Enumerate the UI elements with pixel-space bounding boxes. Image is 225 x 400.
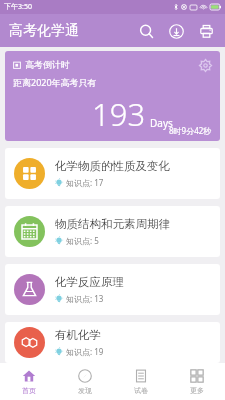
button[interactable]: 物质结构和元素周期律 <box>5 206 220 257</box>
button[interactable]: 试卷 <box>113 363 169 400</box>
staticText: Days <box>150 116 173 130</box>
staticText: 更多 <box>190 386 204 395</box>
button[interactable]: 首页 <box>0 363 57 400</box>
staticText: 有机化学 <box>55 328 101 342</box>
staticText: 知识点: 5 <box>66 235 99 246</box>
button[interactable]: Download <box>161 16 191 46</box>
staticText: 知识点: 13 <box>66 293 104 304</box>
staticText: 首页 <box>22 386 36 395</box>
staticText: 化学反应原理 <box>55 275 124 289</box>
button[interactable]: Settings <box>196 56 214 74</box>
staticText: 化学物质的性质及变化 <box>55 159 170 173</box>
button[interactable]: Search <box>131 16 161 46</box>
staticText: 试卷 <box>134 386 148 395</box>
button[interactable]: 高考倒计时 <box>5 51 220 141</box>
staticText: 距离2020年高考只有 <box>13 76 97 88</box>
button[interactable]: 发现 <box>57 363 113 400</box>
staticText: 发现 <box>78 386 92 395</box>
button[interactable]: 化学物质的性质及变化 <box>5 148 220 199</box>
staticText: 知识点: 19 <box>66 346 104 357</box>
staticText: 8时9分42秒 <box>169 125 212 136</box>
staticText: 高考化学通 <box>9 22 79 40</box>
button[interactable]: 化学反应原理 <box>5 264 220 315</box>
staticText: 物质结构和元素周期律 <box>55 217 170 231</box>
staticText: 下午3:50 <box>4 2 32 12</box>
button[interactable]: 有机化学 <box>5 322 220 363</box>
button[interactable]: 更多 <box>169 363 225 400</box>
staticText: 知识点: 17 <box>66 177 104 188</box>
staticText: 高考倒计时 <box>25 59 70 70</box>
staticText: 193 <box>92 93 146 135</box>
button[interactable]: Print <box>191 16 221 46</box>
